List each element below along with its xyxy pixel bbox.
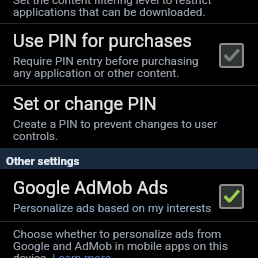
staticText: Personalize ads based on my interests bbox=[13, 201, 212, 215]
staticText: Google AdMob Ads bbox=[13, 177, 168, 198]
staticText: Require PIN entry before purchasing any … bbox=[13, 54, 199, 79]
button[interactable]: Personalize ads, checked bbox=[219, 184, 244, 209]
staticText: Set the content filtering level to restr… bbox=[13, 0, 212, 18]
button[interactable]: Set or change PIN bbox=[0, 86, 258, 148]
staticText: Other settings bbox=[6, 154, 80, 167]
staticText: Use PIN for purchases bbox=[13, 30, 192, 51]
button[interactable]: Use PIN for purchases bbox=[0, 24, 258, 85]
staticText: Choose whether to personalize ads from G… bbox=[13, 227, 228, 258]
button[interactable]: Google AdMob Ads bbox=[0, 169, 258, 221]
staticText: Create a PIN to prevent changes to user … bbox=[13, 117, 218, 142]
button[interactable]: Use PIN for purchases, checked bbox=[219, 43, 244, 68]
staticText: Set or change PIN bbox=[13, 93, 157, 114]
